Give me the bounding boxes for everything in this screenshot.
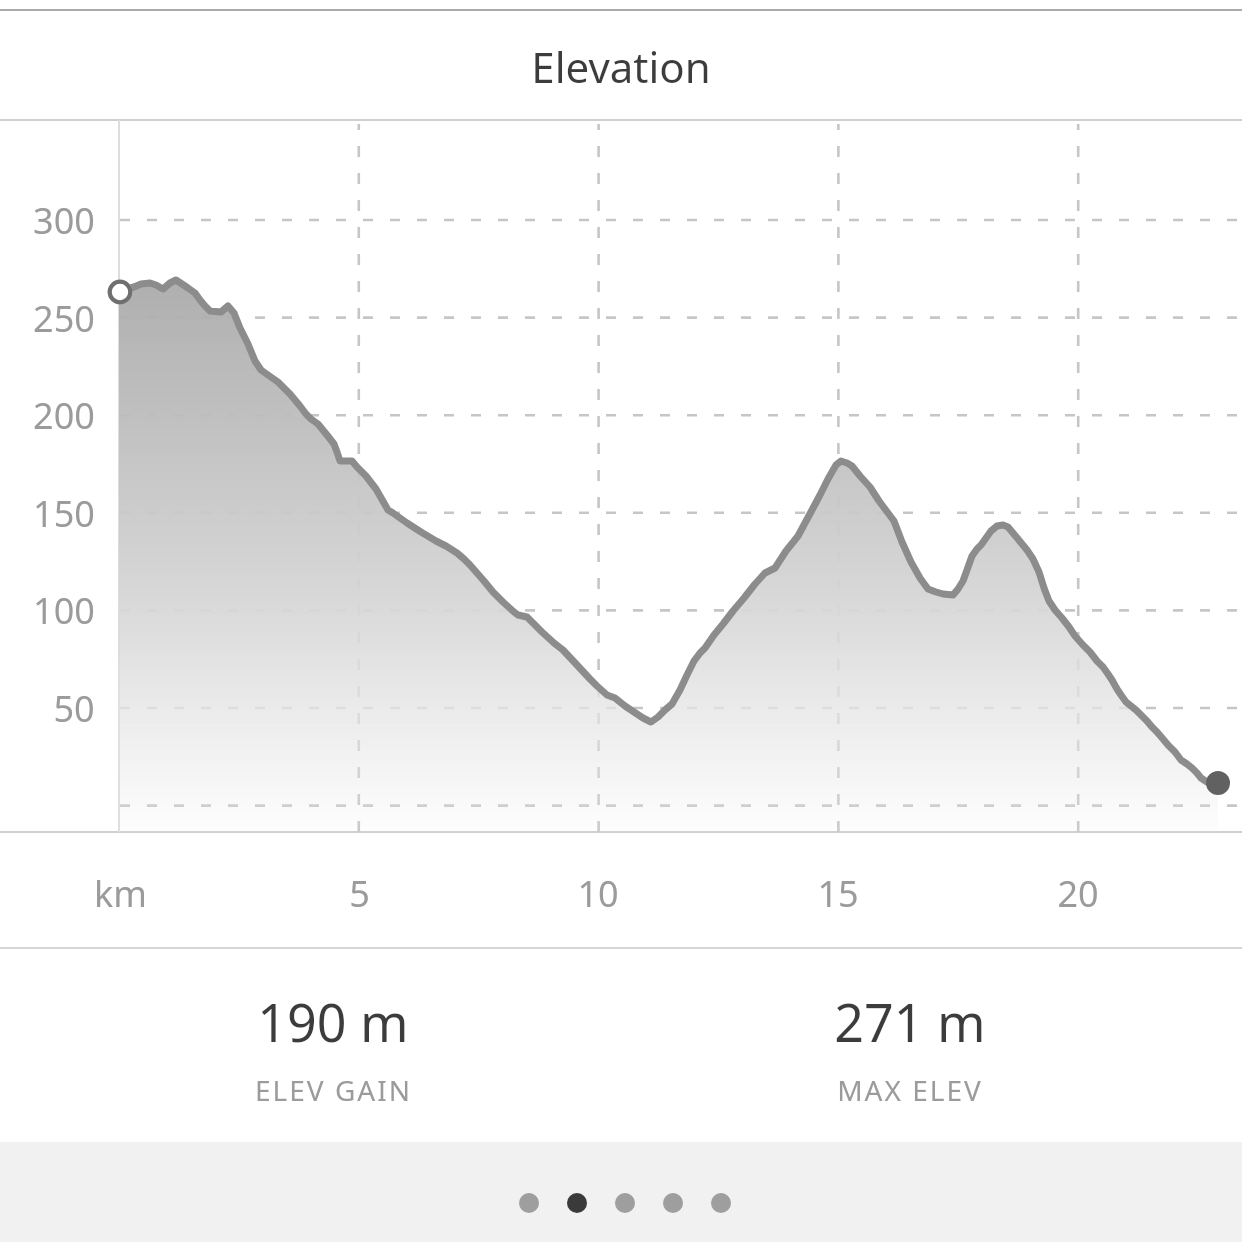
staticText: 250 (33, 294, 95, 342)
staticText: 10 (577, 869, 619, 918)
button[interactable]: 271 m (710, 986, 1110, 1056)
staticText: 271 m (834, 986, 986, 1056)
staticText: 100 (33, 586, 95, 634)
staticText: 300 (33, 196, 95, 244)
staticText: 200 (33, 391, 95, 439)
staticText: 190 m (257, 986, 409, 1056)
staticText: 5 (349, 869, 370, 918)
button[interactable] (499, 1173, 751, 1233)
staticText: 20 (1057, 869, 1099, 918)
button[interactable]: 190 m (133, 986, 533, 1056)
staticText: Elevation (531, 38, 711, 95)
staticText: ELEV GAIN (255, 1071, 412, 1109)
button[interactable]: Elevation (371, 20, 871, 112)
staticText: 50 (53, 684, 95, 732)
staticText: 150 (33, 489, 95, 537)
staticText: km (94, 869, 147, 918)
staticText: MAX ELEV (837, 1071, 983, 1109)
staticText: 15 (817, 869, 859, 918)
